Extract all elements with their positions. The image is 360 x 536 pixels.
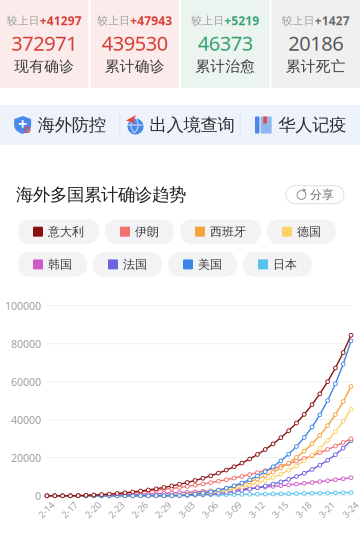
staticText: 华人记疫: [278, 114, 346, 136]
staticText: 累计确诊: [105, 57, 165, 75]
staticText: +5219: [224, 13, 259, 29]
staticText: 2-17: [60, 504, 78, 516]
staticText: 20000: [11, 451, 41, 465]
staticText: 80000: [11, 337, 41, 351]
staticText: 3-03: [177, 504, 195, 516]
staticText: 439530: [102, 30, 168, 56]
staticText: 46373: [198, 30, 253, 56]
staticText: 20186: [288, 30, 343, 56]
staticText: 日本: [273, 257, 297, 272]
button[interactable]: 海外防控: [0, 105, 119, 145]
staticText: 3-18: [294, 504, 312, 516]
staticText: 西班牙: [210, 224, 246, 239]
staticText: 2-14: [37, 504, 55, 516]
staticText: 0: [35, 489, 41, 503]
staticText: 韩国: [48, 257, 72, 272]
staticText: +1427: [315, 13, 350, 29]
button[interactable]: 分享: [286, 186, 344, 204]
staticText: 2-29: [154, 504, 172, 516]
staticText: 2-20: [84, 504, 102, 516]
staticText: 意大利: [48, 224, 84, 239]
staticText: 较上日: [282, 14, 315, 27]
staticText: 海外多国累计确诊趋势: [16, 184, 186, 205]
staticText: +41297: [40, 13, 82, 29]
staticText: 3-24: [341, 504, 359, 516]
staticText: 分享: [310, 187, 334, 202]
staticText: 较上日: [7, 14, 40, 27]
staticText: 德国: [297, 224, 321, 239]
staticText: 较上日: [97, 14, 130, 27]
staticText: 2-23: [107, 504, 125, 516]
staticText: 累计治愈: [195, 57, 255, 75]
staticText: 出入境查询: [149, 114, 234, 136]
staticText: 法国: [123, 257, 147, 272]
staticText: 3-21: [318, 504, 336, 516]
staticText: 海外防控: [38, 114, 106, 136]
staticText: +47943: [130, 13, 172, 29]
staticText: 3-09: [224, 504, 242, 516]
staticText: 60000: [11, 375, 41, 389]
staticText: 伊朗: [135, 224, 159, 239]
staticText: 累计死亡: [286, 57, 346, 75]
staticText: 40000: [11, 413, 41, 427]
staticText: 2-26: [130, 504, 148, 516]
staticText: 3-06: [201, 504, 219, 516]
button[interactable]: 华人记疫: [241, 105, 360, 145]
staticText: 3-15: [271, 504, 289, 516]
staticText: 100000: [5, 299, 41, 313]
staticText: 3-12: [247, 504, 265, 516]
staticText: 较上日: [191, 14, 224, 27]
button[interactable]: 出入境查询: [120, 105, 240, 145]
staticText: 现有确诊: [14, 57, 74, 75]
staticText: 美国: [198, 257, 222, 272]
staticText: 372971: [11, 30, 77, 56]
